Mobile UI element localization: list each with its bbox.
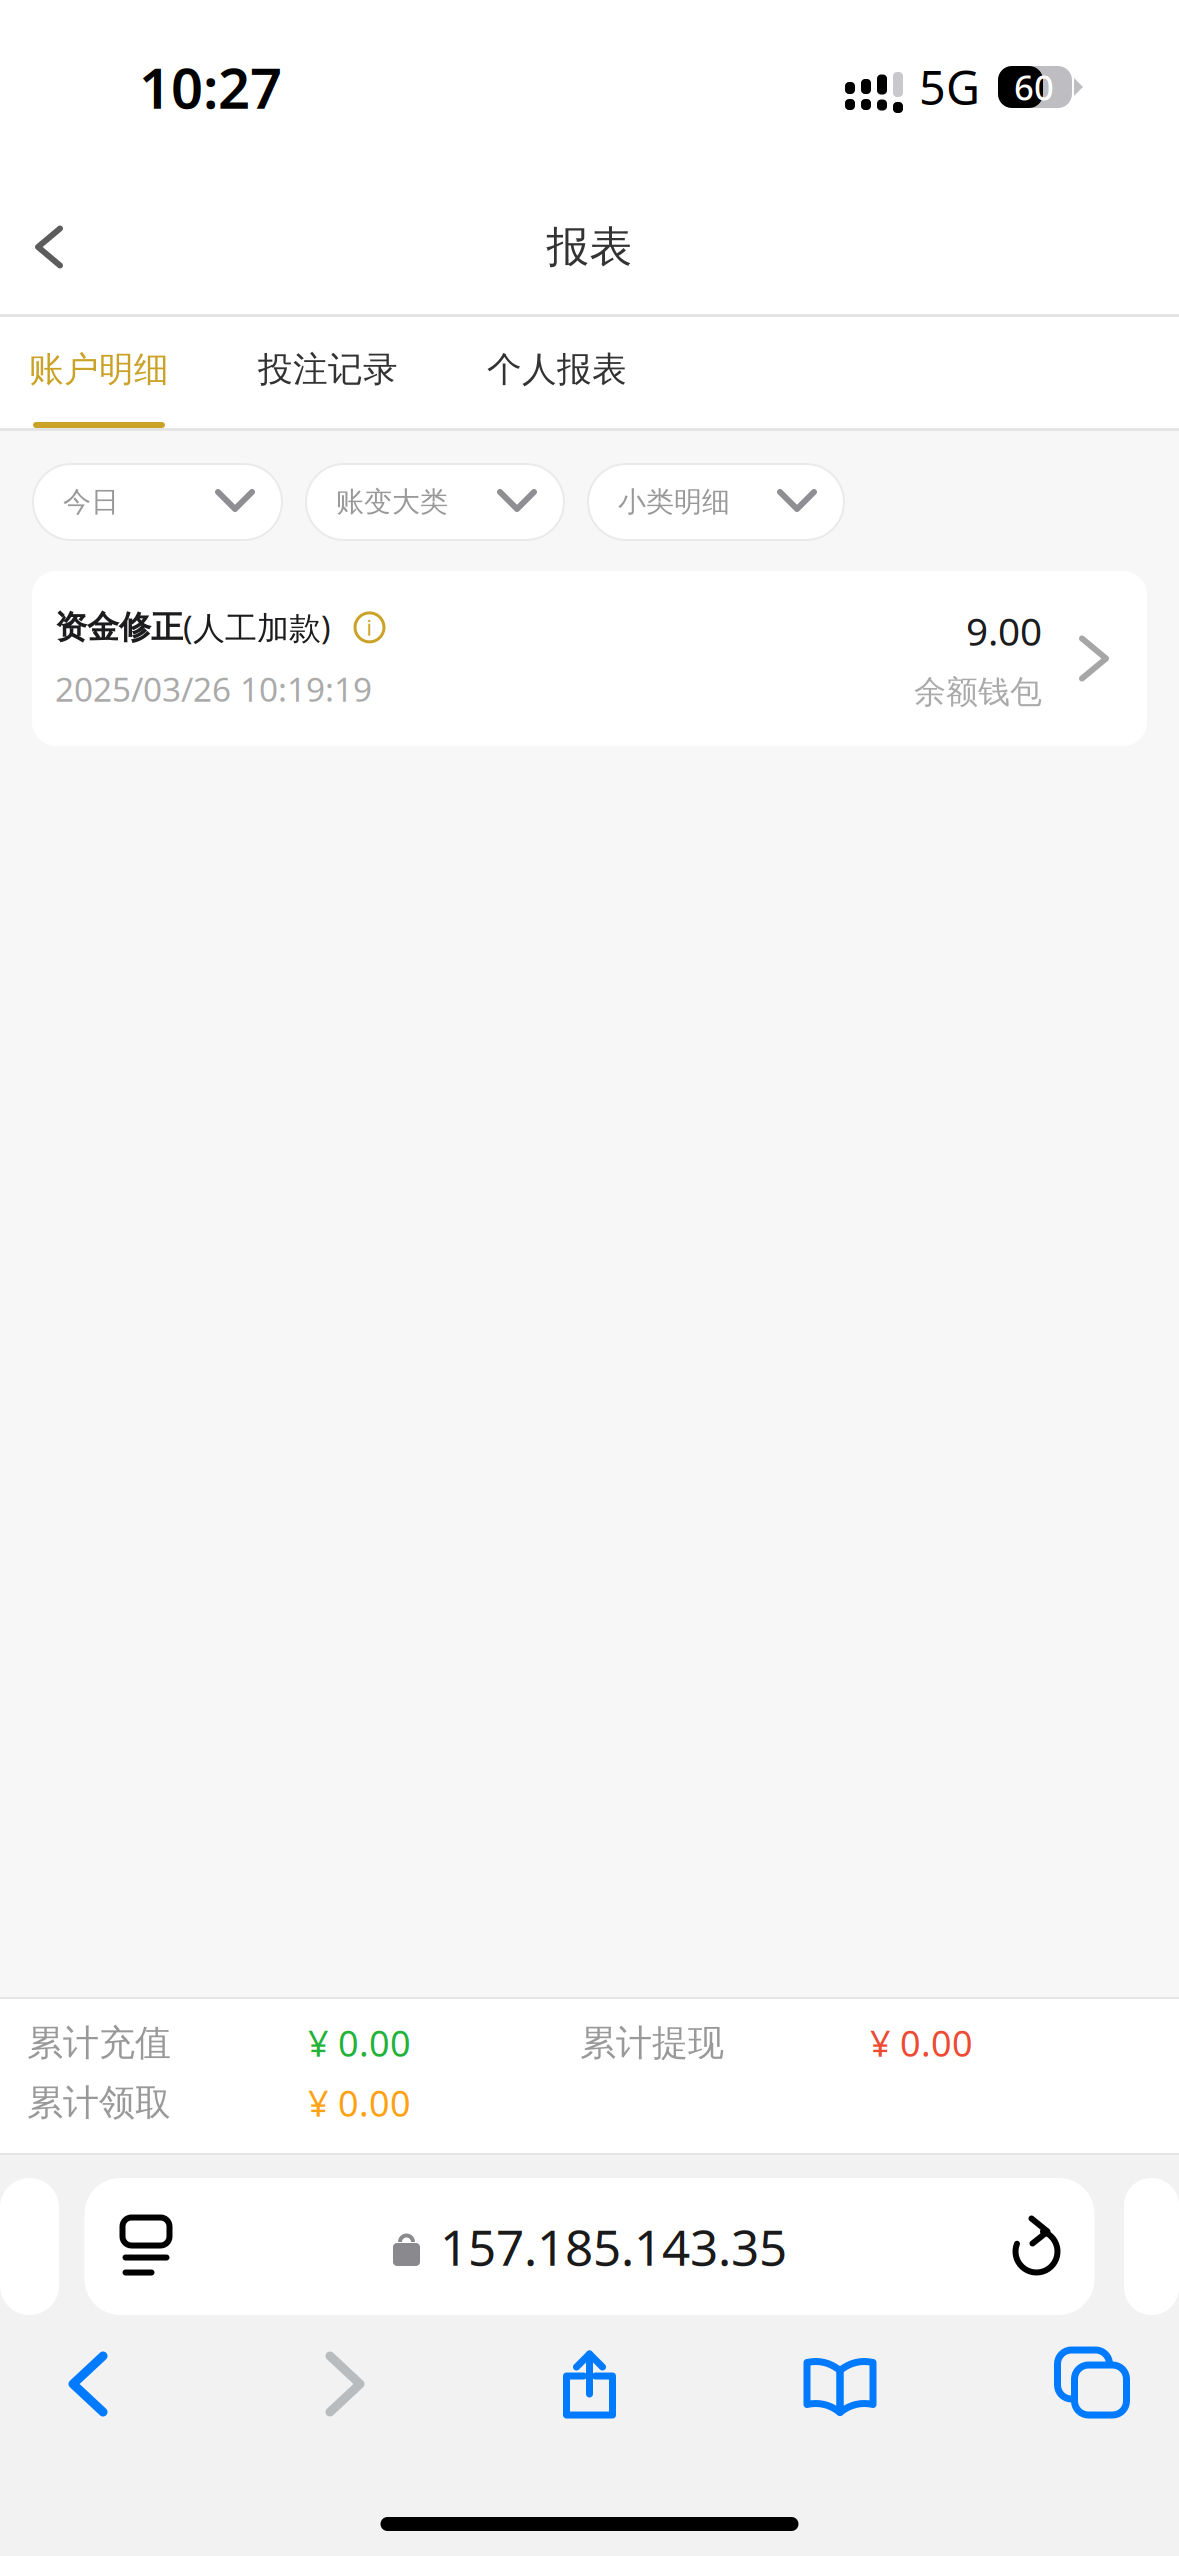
staticText: 2025/03/26 10:19:19 bbox=[55, 667, 372, 711]
staticText: ¥ 0.00 bbox=[308, 2079, 411, 2127]
button[interactable]: 标签页 bbox=[1011, 2325, 1176, 2443]
staticText: 60 bbox=[1014, 64, 1054, 110]
button[interactable]: 小类明细 bbox=[588, 464, 844, 540]
button[interactable]: 书签 bbox=[665, 2325, 1011, 2443]
staticText: 9.00 bbox=[966, 605, 1042, 656]
button[interactable]: 个人报表 bbox=[491, 317, 720, 428]
button[interactable]: 账户明细 bbox=[33, 317, 262, 428]
button[interactable]: 前进 bbox=[176, 2325, 514, 2443]
staticText: 账户明细 bbox=[29, 348, 169, 391]
button[interactable]: 返回 bbox=[0, 190, 106, 303]
staticText: 投注记录 bbox=[258, 348, 398, 391]
staticText: 157.185.143.35 bbox=[440, 2214, 787, 2279]
staticText: 余额钱包 bbox=[914, 672, 1042, 712]
staticText: ¥ 0.00 bbox=[870, 2019, 973, 2067]
staticText: 5G bbox=[919, 56, 980, 118]
staticText: 个人报表 bbox=[487, 348, 627, 391]
staticText: 累计充值 bbox=[27, 2021, 171, 2065]
staticText: i bbox=[366, 613, 372, 641]
button[interactable]: 分享 bbox=[514, 2325, 665, 2443]
staticText: 账变大类 bbox=[336, 485, 448, 519]
button[interactable]: 账变大类 bbox=[306, 464, 564, 540]
button[interactable]: 后退 bbox=[0, 2325, 176, 2443]
staticText: ¥ 0.00 bbox=[308, 2019, 411, 2067]
staticText: 累计领取 bbox=[27, 2081, 171, 2125]
staticText: 小类明细 bbox=[618, 485, 730, 519]
staticText: 10:27 bbox=[139, 50, 282, 124]
staticText: 今日 bbox=[63, 485, 119, 519]
button[interactable]: 今日 bbox=[33, 464, 282, 540]
staticText: (人工加款) bbox=[183, 606, 331, 649]
button[interactable]: 刷新 bbox=[976, 2177, 1094, 2315]
staticText: 报表 bbox=[546, 221, 632, 273]
button[interactable]: 资金修正 bbox=[0, 571, 1179, 746]
button[interactable]: 投注记录 bbox=[262, 317, 491, 428]
staticText: 资金修正 bbox=[55, 608, 183, 647]
staticText: 累计提现 bbox=[580, 2021, 724, 2065]
button[interactable]: 页面设置 bbox=[84, 2177, 203, 2315]
